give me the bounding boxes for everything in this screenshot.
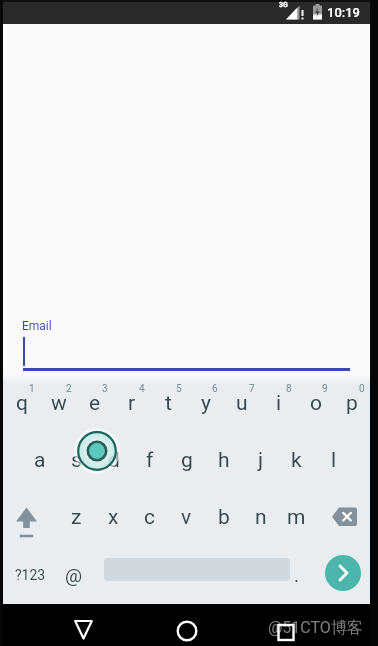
staticText: y [201,391,211,416]
button[interactable] [3,489,58,546]
staticText: @ [65,564,83,586]
button[interactable]: f [131,432,168,489]
staticText: Email [22,319,52,333]
button[interactable]: y [187,375,224,432]
staticText: d [108,448,120,473]
staticText: t [165,391,172,416]
staticText: 4 [139,383,145,395]
button[interactable]: @ [55,546,92,604]
button[interactable]: l [315,432,352,489]
button[interactable]: n [242,489,279,546]
staticText: h [218,448,230,473]
staticText: s [71,448,82,473]
staticText: k [291,448,302,473]
button[interactable]: o [297,375,334,432]
button[interactable] [262,604,310,646]
button[interactable]: j [242,432,279,489]
staticText: o [310,391,322,416]
staticText: l [331,448,337,473]
staticText: 9 [322,383,328,395]
staticText: 2 [66,383,72,395]
button[interactable]: v [168,489,205,546]
button[interactable]: s [58,432,95,489]
staticText: f [146,448,154,473]
staticText: 0 [359,383,365,395]
staticText: q [16,391,28,416]
staticText: m [287,505,306,530]
staticText: 5 [176,383,182,395]
button[interactable] [163,604,211,646]
button[interactable]: c [131,489,168,546]
button[interactable]: m [278,489,315,546]
button[interactable]: d [95,432,132,489]
button[interactable]: . [276,546,318,604]
button[interactable]: h [205,432,242,489]
staticText: g [181,448,193,473]
button[interactable]: g [168,432,205,489]
staticText: 8 [286,383,292,395]
button[interactable]: k [278,432,315,489]
staticText: w [51,391,67,416]
button[interactable]: i [260,375,297,432]
staticText: @51CTO博客 [268,618,363,638]
staticText: x [108,505,119,530]
button[interactable] [315,489,370,546]
button[interactable]: q [3,375,40,432]
button[interactable]: u [223,375,260,432]
button[interactable]: t [150,375,187,432]
button[interactable]: z [58,489,95,546]
button[interactable]: e [76,375,113,432]
button[interactable]: w [40,375,77,432]
button[interactable] [61,604,109,646]
button[interactable]: b [205,489,242,546]
staticText: r [128,391,136,416]
staticText: 3 [102,383,108,395]
staticText: z [71,505,82,530]
staticText: . [294,564,300,586]
staticText: u [236,391,248,416]
staticText: p [346,391,358,416]
staticText: e [89,391,101,416]
staticText: 3G [279,1,288,9]
staticText: 1 [29,383,35,395]
staticText: b [218,505,230,530]
staticText: 6 [212,383,218,395]
staticText: j [258,448,264,473]
staticText: i [276,391,282,416]
button[interactable]: ?123 [3,546,58,604]
button[interactable]: a [21,432,58,489]
staticText: n [255,505,267,530]
staticText: v [181,505,192,530]
staticText: c [144,505,155,530]
staticText: a [34,448,46,473]
staticText: ?123 [15,567,46,583]
staticText: 10:19 [327,5,361,20]
button[interactable]: x [95,489,132,546]
button[interactable]: p [333,375,370,432]
button[interactable] [325,555,361,591]
button[interactable]: r [113,375,150,432]
button[interactable] [22,314,350,370]
staticText: 7 [249,383,255,395]
